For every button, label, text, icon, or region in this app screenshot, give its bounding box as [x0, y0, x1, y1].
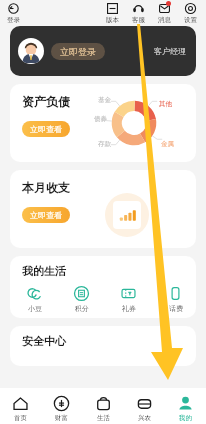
staticText: 首页 [14, 414, 27, 422]
staticText: 登录 [7, 16, 20, 24]
button[interactable]: 客服 [130, 2, 147, 24]
staticText: 兴农 [138, 414, 151, 422]
staticText: 我的 [179, 414, 192, 422]
staticText: 立即查看 [30, 124, 62, 134]
staticText: 生活 [97, 414, 110, 422]
staticText: 其他 [159, 100, 172, 108]
button[interactable]: 消息 [156, 2, 173, 24]
staticText: 金属 [161, 140, 174, 148]
button[interactable]: 我的 [165, 391, 206, 422]
button[interactable]: 小豆 [22, 285, 47, 313]
staticText: 话费 [169, 304, 183, 313]
button[interactable]: 兴农 [124, 391, 165, 422]
staticText: 财富 [55, 414, 68, 422]
staticText: 存款 [98, 140, 111, 148]
staticText: 本月收支 [22, 180, 70, 195]
button[interactable]: 资产负债 [10, 84, 196, 162]
staticText: 消息 [158, 16, 171, 24]
staticText: 安全中心 [22, 334, 66, 348]
button[interactable]: 立即登录 [10, 26, 196, 76]
staticText: 客服 [132, 16, 145, 24]
button[interactable]: 安全中心 [10, 326, 196, 366]
staticText: 积分 [75, 304, 89, 313]
staticText: 我的生活 [22, 264, 66, 278]
staticText: 立即查看 [30, 210, 62, 220]
button[interactable]: 立即查看 [22, 207, 70, 223]
staticText: 设置 [184, 16, 197, 24]
staticText: 版本 [106, 16, 119, 24]
button[interactable]: 客户经理 [154, 46, 188, 56]
staticText: 礼券 [122, 304, 136, 313]
button[interactable]: 版本 [104, 2, 121, 24]
staticText: 客户经理 [154, 46, 186, 56]
staticText: 小豆 [28, 304, 42, 313]
staticText: 基金 [98, 96, 111, 104]
button[interactable]: 财富 [41, 391, 82, 422]
button[interactable]: 话费 [163, 285, 188, 313]
button[interactable]: 生活 [83, 391, 124, 422]
button[interactable]: 礼券 [116, 285, 141, 313]
button[interactable]: 积分 [69, 285, 94, 313]
button[interactable]: 立即查看 [22, 121, 70, 137]
button[interactable]: 本月收支 [10, 170, 196, 248]
staticText: 资产负债 [22, 94, 70, 109]
button[interactable]: 立即登录 [51, 43, 105, 60]
button[interactable]: 登录 [7, 2, 20, 24]
button[interactable]: 首页 [0, 391, 41, 422]
button[interactable]: 设置 [182, 2, 199, 24]
staticText: 立即登录 [60, 46, 96, 57]
staticText: 债券 [94, 115, 107, 123]
